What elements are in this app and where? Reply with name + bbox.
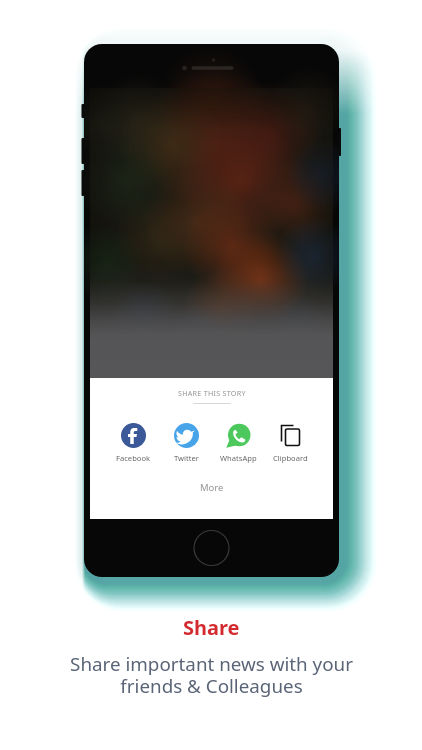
staticText: SHARE THIS STORY	[178, 388, 246, 398]
button[interactable]: More	[184, 477, 240, 498]
button[interactable]: Twitter	[160, 423, 212, 463]
button[interactable]: WhatsApp	[212, 423, 264, 463]
staticText: WhatsApp	[220, 453, 257, 463]
staticText: Twitter	[174, 453, 199, 463]
staticText: Facebook	[116, 453, 151, 463]
staticText: Share important news with your friends &…	[70, 651, 353, 699]
staticText: More	[200, 481, 224, 494]
button[interactable]: Clipboard	[264, 423, 316, 463]
button[interactable]: Facebook	[107, 423, 160, 463]
staticText: Share	[183, 614, 240, 641]
staticText: Clipboard	[273, 453, 308, 463]
